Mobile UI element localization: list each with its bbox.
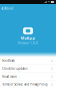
staticText: Read more — [2, 75, 17, 78]
staticText: Feedback — [2, 59, 14, 62]
staticText: Version 1.0.0 — [18, 41, 38, 45]
staticText: MyApp — [20, 35, 35, 40]
button[interactable]: Feedback — [0, 57, 56, 65]
staticText: About — [4, 7, 13, 10]
button[interactable]: Read more — [0, 73, 56, 81]
button[interactable]: Check for updates — [0, 65, 56, 73]
staticText: Terms of Service and Privacy Policy — [2, 83, 47, 86]
button[interactable]: Terms of Service and Privacy Policy — [0, 81, 56, 89]
staticText: Check for updates — [2, 67, 27, 70]
button[interactable]: About — [0, 4, 13, 11]
